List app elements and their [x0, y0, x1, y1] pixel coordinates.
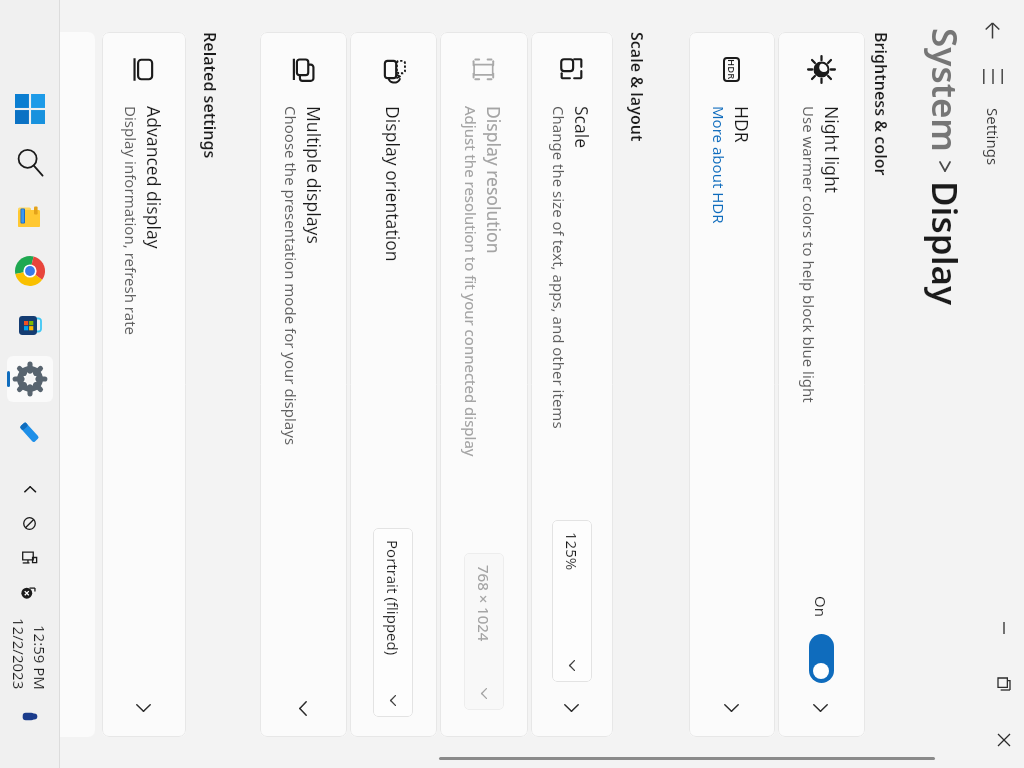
button[interactable]: Night light [778, 32, 865, 737]
button[interactable]: Display resolution [440, 32, 528, 737]
button[interactable]: Display orientation [350, 32, 437, 737]
staticText: System [921, 28, 969, 152]
staticText: Choose the presentation mode for your di… [281, 106, 301, 446]
staticText: Display orientation [381, 106, 405, 262]
button[interactable]: System [921, 28, 969, 152]
staticText: 12:59 PM [30, 625, 50, 690]
button[interactable]: Settings [3, 352, 57, 406]
staticText: Use warmer colors to help block blue lig… [799, 106, 819, 403]
staticText: Brightness & color [870, 32, 892, 176]
button[interactable]: Open settings page [554, 690, 590, 726]
staticText: Settings [983, 108, 1003, 166]
button[interactable]: Close [984, 712, 1024, 768]
button[interactable]: Search [3, 136, 57, 190]
button[interactable]: Show hidden icons [3, 472, 57, 506]
button[interactable]: Multiple displays [260, 32, 347, 737]
button[interactable]: 768 × 1024 [464, 553, 504, 710]
staticText: 125% [562, 532, 582, 571]
staticText: Night light [820, 106, 844, 194]
button[interactable]: File Explorer [3, 190, 57, 244]
staticText: Portrait (flipped) [383, 540, 403, 656]
button[interactable]: Open settings page [126, 690, 162, 726]
staticText: On [811, 596, 831, 617]
button[interactable]: Restore [984, 656, 1024, 712]
button[interactable]: Advanced display [102, 32, 186, 737]
staticText: Advanced display [142, 106, 166, 249]
button[interactable]: Scale [531, 32, 613, 737]
button[interactable]: Navigation menu [975, 58, 1011, 94]
button[interactable]: Sticky Notes [3, 406, 57, 460]
staticText: 768 × 1024 [474, 565, 494, 642]
button[interactable]: HDR [689, 32, 775, 737]
button[interactable]: Expand [285, 690, 321, 726]
button[interactable]: Portrait (flipped) [373, 528, 413, 717]
button[interactable]: Open settings page [714, 690, 750, 726]
staticText: More about HDR [709, 106, 729, 224]
staticText: HDR [730, 106, 754, 143]
staticText: Change the size of text, apps, and other… [549, 106, 569, 429]
button[interactable]: 125% [552, 520, 592, 682]
staticText: Adjust the resolution to fit your connec… [461, 106, 481, 457]
staticText: Display [921, 181, 969, 306]
staticText: Scale [570, 106, 594, 149]
button[interactable]: Night light toggle [809, 634, 834, 683]
staticText: Display resolution [482, 106, 506, 254]
button[interactable] [55, 32, 95, 737]
button[interactable]: Notifications [3, 699, 57, 733]
button[interactable]: Microsoft Store [3, 298, 57, 352]
button[interactable]: Display [3, 540, 57, 574]
button[interactable]: More about HDR [709, 106, 729, 224]
button[interactable]: Network [3, 506, 57, 540]
button[interactable]: Back [975, 12, 1011, 48]
staticText: Scale & layout [626, 32, 648, 142]
staticText: Display information, refresh rate [121, 106, 141, 336]
staticText: HDR [725, 59, 738, 80]
button[interactable]: Minimize [984, 600, 1024, 656]
staticText: Multiple displays [302, 106, 326, 244]
staticText: Related settings [199, 32, 221, 159]
button[interactable]: Volume muted [3, 574, 57, 608]
button[interactable]: Google Chrome [3, 244, 57, 298]
button[interactable]: Start [3, 82, 57, 136]
button[interactable]: Open settings page [803, 690, 839, 726]
button[interactable]: 12:59 PM [9, 612, 50, 696]
staticText: 12/2/2023 [9, 618, 29, 690]
